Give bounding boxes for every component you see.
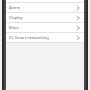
button[interactable]: VI. Smart networking — [6, 33, 84, 42]
button[interactable]: Display — [6, 13, 84, 22]
staticText: Display — [9, 15, 75, 20]
button[interactable]: Alarm — [6, 3, 84, 12]
button[interactable]: More — [6, 23, 84, 32]
staticText: Alarm — [9, 5, 75, 10]
staticText: More — [9, 25, 75, 30]
staticText: VI. Smart networking — [9, 35, 75, 40]
